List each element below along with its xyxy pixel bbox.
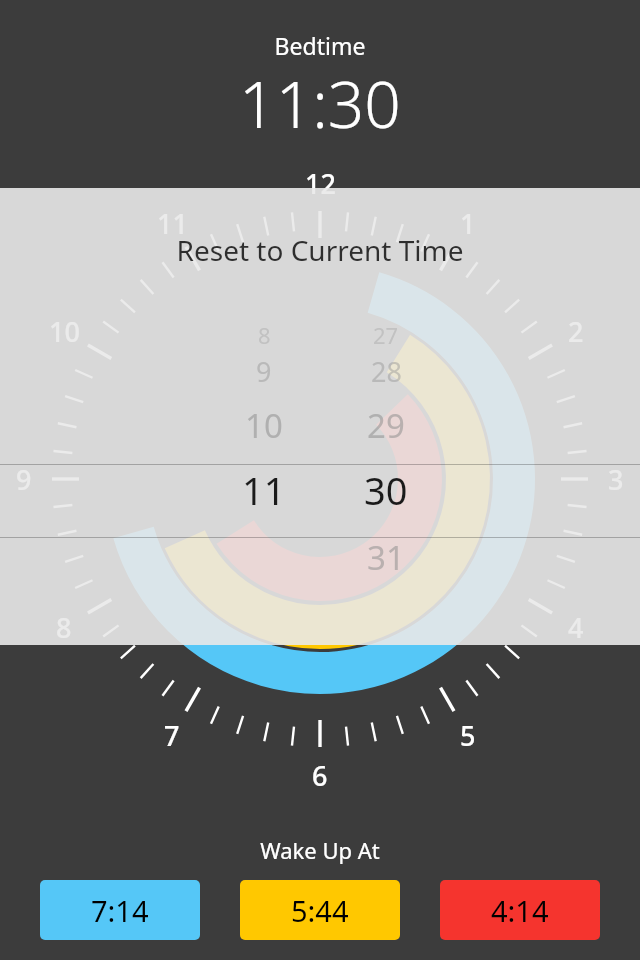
staticText: 5 <box>460 717 476 754</box>
staticText: 8 <box>258 320 271 350</box>
button[interactable]: 4:14 <box>440 880 600 940</box>
staticText: 5:44 <box>291 891 349 930</box>
staticText: 11:30 <box>0 60 640 147</box>
staticText: 11 <box>242 464 286 516</box>
staticText: Wake Up At <box>0 835 640 865</box>
staticText: 31 <box>367 535 405 580</box>
staticText: 4 <box>568 609 584 646</box>
staticText: 29 <box>367 403 405 448</box>
staticText: 10 <box>245 403 283 448</box>
staticText: 27 <box>373 320 399 350</box>
staticText: 12 <box>305 165 336 202</box>
button[interactable]: 7:14 <box>40 880 200 940</box>
staticText: 11 <box>157 205 188 242</box>
staticText: 8 <box>56 609 72 646</box>
staticText: 7:14 <box>91 891 149 930</box>
staticText: 6 <box>312 757 328 794</box>
staticText: 10 <box>49 313 80 350</box>
staticText: 4:14 <box>491 891 549 930</box>
staticText: Bedtime <box>0 30 640 61</box>
staticText: 3 <box>608 461 624 498</box>
staticText: 9 <box>16 461 32 498</box>
staticText: 30 <box>364 464 408 516</box>
staticText: 9 <box>256 353 272 390</box>
staticText: 2 <box>568 313 584 350</box>
button[interactable]: 5:44 <box>240 880 400 940</box>
staticText: 7 <box>164 717 180 754</box>
staticText: 28 <box>371 353 402 390</box>
staticText: 1 <box>460 205 476 242</box>
